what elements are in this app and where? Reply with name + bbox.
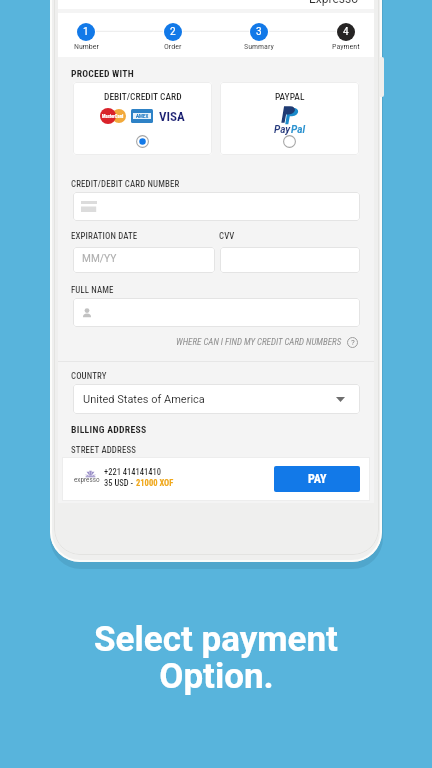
staticText: FULL NAME [71, 285, 114, 295]
button[interactable]: PAY [274, 466, 360, 492]
staticText: Summary [244, 42, 274, 51]
button[interactable]: United States of America [73, 384, 360, 414]
button[interactable] [73, 298, 360, 327]
button[interactable]: 3 [234, 13, 284, 51]
button[interactable]: PAYPAL [220, 82, 359, 155]
button[interactable]: 4 [321, 13, 371, 51]
staticText: PAY [308, 472, 327, 486]
staticText: MasterCard [102, 114, 124, 119]
staticText: Pay [274, 124, 291, 136]
button[interactable]: Select payment option [283, 135, 296, 148]
button[interactable]: 1 [61, 13, 111, 51]
staticText: ? [351, 338, 355, 347]
staticText: BILLING ADDRESS [71, 424, 147, 435]
staticText: 2 [170, 26, 176, 38]
staticText: 35 USD - [104, 478, 136, 488]
staticText: Option. [159, 656, 274, 697]
staticText: PROCEED WITH [71, 68, 134, 79]
staticText: 21000 XOF [136, 478, 174, 488]
staticText: STREET ADDRESS [71, 445, 137, 455]
button[interactable]: DEBIT/CREDIT CARD [73, 82, 212, 155]
staticText: MM/YY [82, 253, 117, 265]
staticText: VISA [159, 109, 185, 124]
staticText: CVV [219, 231, 235, 241]
button[interactable]: Where can I find my credit card numbers [176, 337, 358, 348]
staticText: Number [74, 42, 99, 51]
staticText: COUNTRY [71, 371, 107, 381]
staticText: 3 [256, 26, 262, 38]
staticText: CREDIT/DEBIT CARD NUMBER [71, 179, 180, 189]
button[interactable] [73, 192, 360, 221]
button[interactable] [220, 247, 360, 273]
staticText: DEBIT/CREDIT CARD [104, 91, 182, 102]
staticText: PAYPAL [275, 91, 305, 102]
button[interactable]: Selected payment option [136, 135, 149, 148]
staticText: Payment [332, 42, 360, 51]
staticText: 4 [343, 26, 349, 38]
staticText: Expresso [309, 0, 359, 6]
staticText: EXPIRATION DATE [71, 231, 138, 241]
staticText: Pal [291, 124, 305, 136]
staticText: +221 414141410 [104, 467, 162, 477]
staticText: Select payment [94, 619, 338, 660]
staticText: AMEX [136, 113, 149, 119]
button[interactable]: MM/YY [73, 247, 215, 273]
staticText: United States of America [83, 393, 205, 406]
staticText: WHERE CAN I FIND MY CREDIT CARD NUMBERS [176, 337, 342, 348]
staticText: expresso [74, 476, 100, 483]
button[interactable]: 2 [148, 13, 198, 51]
staticText: 1 [83, 26, 89, 38]
staticText: Order [164, 42, 182, 51]
